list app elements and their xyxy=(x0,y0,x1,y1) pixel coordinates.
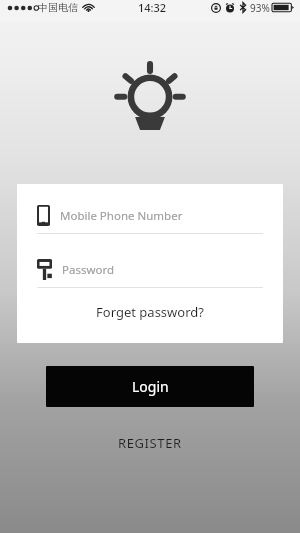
button[interactable]: REGISTER xyxy=(104,429,196,457)
staticText: Forget password? xyxy=(96,303,204,321)
button[interactable]: Login xyxy=(46,366,254,407)
staticText: 14:32 xyxy=(138,0,167,15)
button[interactable]: Phone number xyxy=(17,205,283,226)
staticText: Login xyxy=(132,377,169,396)
staticText: Mobile Phone Number xyxy=(60,208,183,224)
staticText: REGISTER xyxy=(118,434,182,452)
staticText: 93% xyxy=(250,1,270,15)
other: Phone number xyxy=(37,205,50,226)
staticText: Password xyxy=(62,262,115,278)
staticText: 中国电信 xyxy=(38,1,78,14)
button[interactable]: Forget password? xyxy=(86,297,214,327)
other: Password xyxy=(37,259,52,280)
button[interactable]: Password xyxy=(17,259,283,280)
